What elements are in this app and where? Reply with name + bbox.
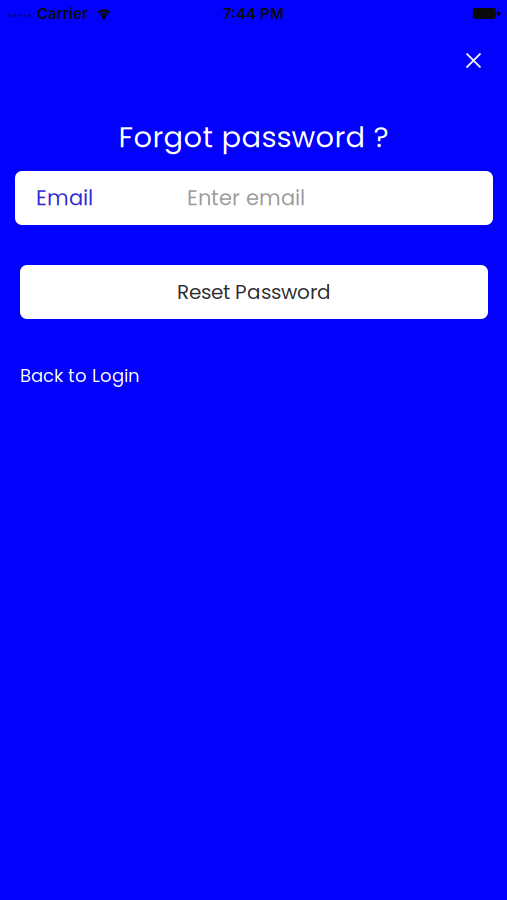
staticText: Enter email — [187, 183, 305, 213]
staticText: Reset Password — [177, 278, 331, 306]
button[interactable]: Reset Password — [20, 265, 488, 319]
button[interactable]: Close — [458, 45, 489, 76]
staticText: Back to Login — [20, 363, 140, 388]
button[interactable]: Back to Login — [20, 363, 140, 388]
staticText: Forgot password ? — [118, 117, 388, 157]
staticText: Email — [36, 183, 93, 213]
staticText: Carrier — [37, 4, 88, 22]
staticText: 7:44 PM — [223, 4, 284, 22]
